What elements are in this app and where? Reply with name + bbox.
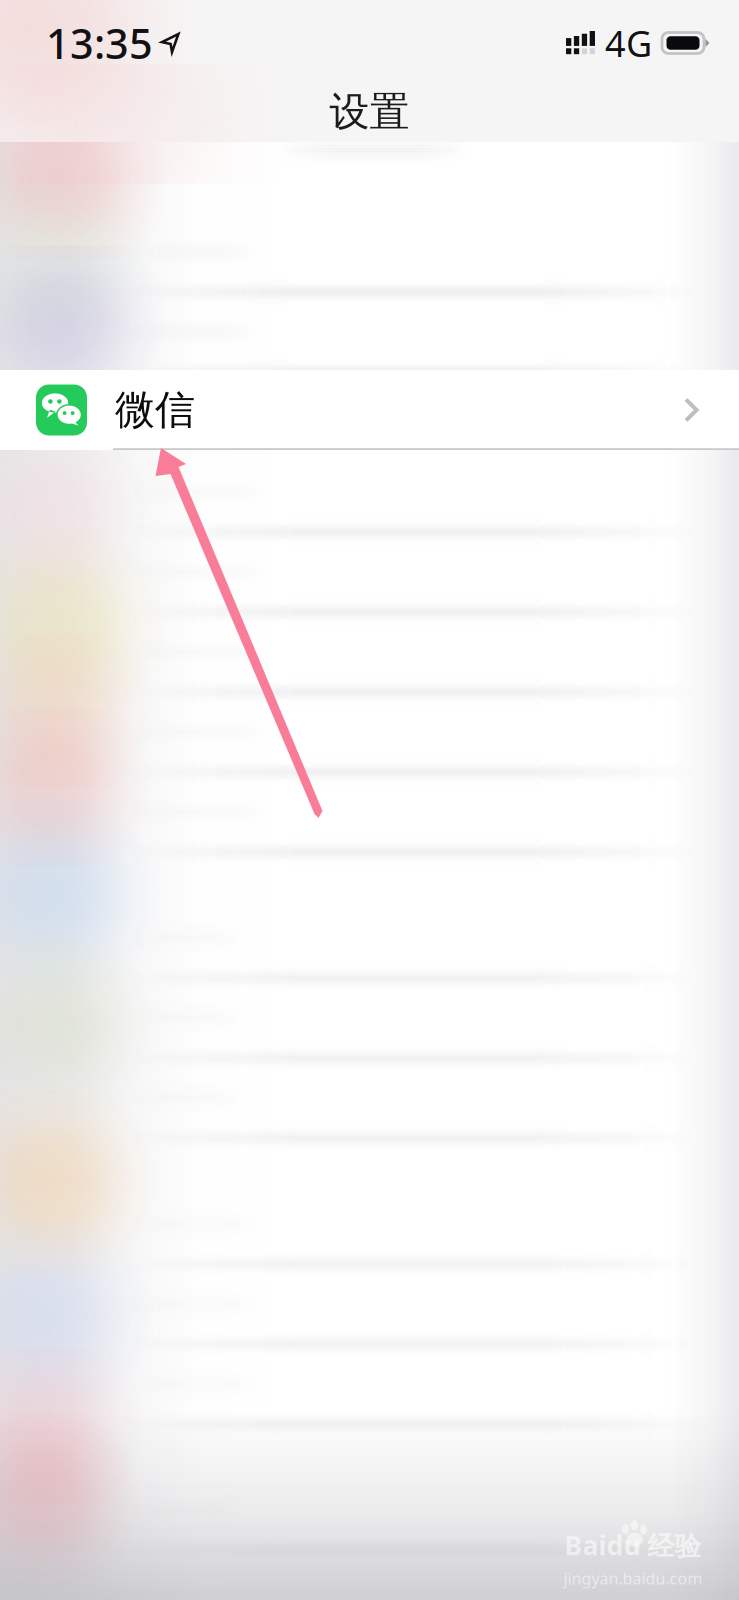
button[interactable]: 微信 <box>0 370 739 450</box>
button[interactable]: 设置 <box>0 86 739 138</box>
staticText: Baidu 经验 <box>564 1527 701 1563</box>
staticText: 13:35 <box>46 16 153 70</box>
staticText: 微信 <box>115 385 195 434</box>
staticText: 4G <box>605 19 652 67</box>
staticText: jingyan.baidu.com <box>563 1568 702 1589</box>
staticText: 设置 <box>329 87 409 136</box>
